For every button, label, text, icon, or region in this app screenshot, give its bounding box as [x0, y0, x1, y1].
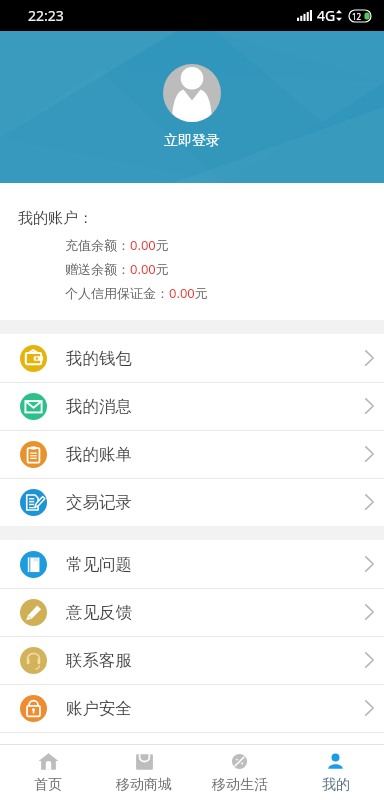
staticText: 账户安全 [66, 698, 132, 719]
staticText: 我的钱包 [66, 348, 132, 369]
button[interactable]: 立即登录 [164, 132, 220, 150]
staticText: 赠送余额：0.00元 [65, 260, 169, 278]
button[interactable]: 账户安全 [0, 684, 384, 732]
button[interactable]: Avatar [163, 64, 221, 122]
button[interactable]: 移动生活 [192, 745, 288, 800]
button[interactable]: 我的消息 [0, 382, 384, 430]
staticText: 移动生活 [212, 776, 268, 794]
staticText: 我的账单 [66, 444, 132, 465]
staticText: 个人信用保证金：0.00元 [65, 284, 208, 302]
button[interactable]: 我的账单 [0, 430, 384, 478]
staticText: 12 [352, 11, 362, 22]
staticText: 4G [317, 6, 336, 25]
staticText: 充值余额：0.00元 [65, 236, 169, 254]
button[interactable]: 我的钱包 [0, 334, 384, 382]
button[interactable]: 首页 [0, 745, 96, 800]
button[interactable]: 常见问题 [0, 540, 384, 588]
staticText: 22:23 [28, 6, 64, 25]
staticText: 常见问题 [66, 554, 132, 575]
button[interactable]: 我的 [288, 745, 384, 800]
staticText: 联系客服 [66, 650, 132, 671]
button[interactable]: 意见反馈 [0, 588, 384, 636]
staticText: 首页 [34, 776, 62, 794]
staticText: 交易记录 [66, 492, 132, 513]
staticText: 意见反馈 [66, 602, 132, 623]
button[interactable]: 移动商城 [96, 745, 192, 800]
staticText: 我的账户： [18, 209, 93, 228]
button[interactable]: 交易记录 [0, 478, 384, 526]
staticText: 我的消息 [66, 396, 132, 417]
staticText: 移动商城 [116, 776, 172, 794]
staticText: 我的 [322, 776, 350, 794]
button[interactable]: 联系客服 [0, 636, 384, 684]
